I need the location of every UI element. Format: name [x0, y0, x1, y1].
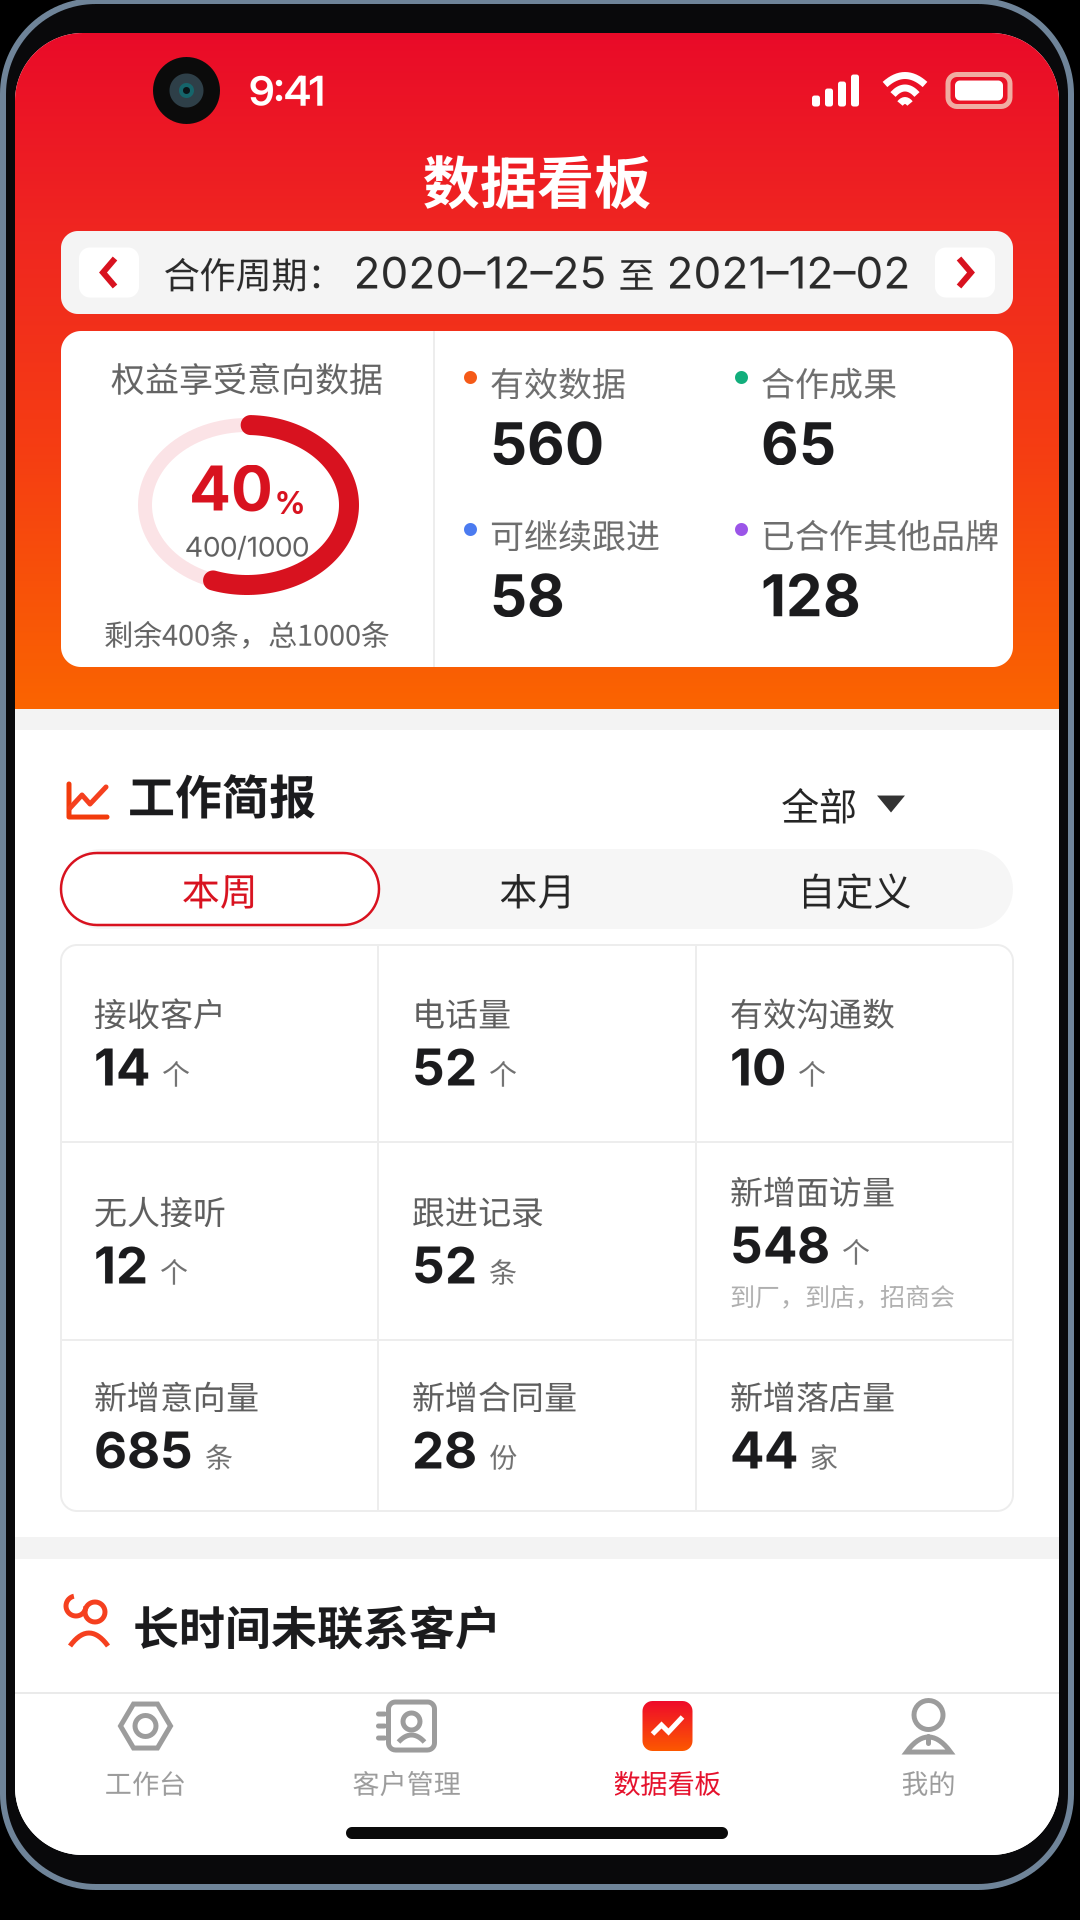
staticText: 电话量	[412, 988, 511, 1036]
button[interactable]: 上一个周期	[79, 247, 139, 297]
button[interactable]: 工作台	[15, 1697, 276, 1805]
staticText: 有效沟通数	[730, 988, 895, 1036]
staticText: 权益享受意向数据	[111, 352, 383, 402]
button[interactable]: 客户管理	[276, 1697, 537, 1805]
staticText: 剩余400条，总1000条	[104, 612, 390, 654]
staticText: 合作成果	[761, 357, 897, 406]
staticText: 个	[160, 1250, 188, 1291]
staticText: 无人接听	[94, 1186, 226, 1234]
staticText: 52	[412, 1036, 477, 1098]
staticText: 接收客户	[94, 988, 226, 1036]
staticText: 数据看板	[423, 138, 651, 220]
staticText: 客户管理	[352, 1762, 460, 1802]
staticText: 到厂，到店，招商会	[730, 1277, 955, 1313]
staticText: 本周	[182, 861, 258, 916]
staticText: 跟进记录	[412, 1186, 544, 1234]
staticText: 已合作其他品牌	[761, 509, 999, 558]
staticText: 工作简报	[128, 760, 316, 828]
staticText: 合作周期：	[163, 246, 343, 298]
staticText: 新增意向量	[94, 1371, 259, 1419]
staticText: 份	[489, 1435, 517, 1476]
staticText: 新增面访量	[730, 1166, 895, 1214]
staticText: 个	[489, 1052, 517, 1093]
staticText: 家	[810, 1435, 838, 1476]
staticText: 560	[490, 408, 604, 478]
staticText: 全部	[781, 776, 857, 831]
staticText: 个	[842, 1230, 870, 1271]
button[interactable]: 自定义	[696, 853, 1013, 925]
staticText: 本月	[499, 861, 575, 916]
staticText: 10	[730, 1036, 786, 1098]
staticText: 工作台	[105, 1762, 186, 1802]
button[interactable]: 全部	[781, 773, 905, 835]
staticText: 14	[94, 1036, 150, 1098]
staticText: 52	[412, 1234, 477, 1296]
staticText: 40	[189, 451, 273, 526]
staticText: 长时间未联系客户	[133, 1592, 501, 1658]
staticText: 新增落店量	[730, 1371, 895, 1419]
staticText: 数据看板	[613, 1762, 721, 1802]
staticText: 2020–12–25	[353, 246, 606, 299]
button[interactable]: 下一个周期	[935, 247, 995, 297]
staticText: 新增合同量	[412, 1371, 577, 1419]
staticText: 9:41	[249, 65, 325, 116]
button[interactable]: 本周	[61, 853, 379, 925]
staticText: 条	[489, 1250, 517, 1291]
staticText: 个	[798, 1052, 826, 1093]
staticText: 可继续跟进	[490, 509, 660, 558]
staticText: 条	[205, 1435, 233, 1476]
staticText: 至	[618, 246, 654, 298]
staticText: 12	[94, 1234, 148, 1296]
staticText: 548	[730, 1214, 830, 1276]
button[interactable]: 数据看板	[537, 1697, 798, 1805]
staticText: 58	[490, 560, 565, 630]
staticText: 有效数据	[490, 357, 626, 406]
staticText: 我的	[901, 1762, 955, 1802]
staticText: 65	[761, 408, 836, 478]
staticText: 400/1000	[185, 530, 309, 563]
staticText: 685	[94, 1419, 193, 1481]
button[interactable]: 本月	[379, 853, 696, 925]
staticText: 28	[412, 1419, 477, 1481]
staticText: 44	[730, 1419, 798, 1481]
staticText: %	[275, 484, 305, 522]
staticText: 个	[162, 1052, 190, 1093]
staticText: 自定义	[797, 861, 911, 916]
button[interactable]: 我的	[798, 1697, 1059, 1805]
staticText: 128	[761, 560, 861, 630]
staticText: 2021–12–02	[666, 246, 910, 299]
